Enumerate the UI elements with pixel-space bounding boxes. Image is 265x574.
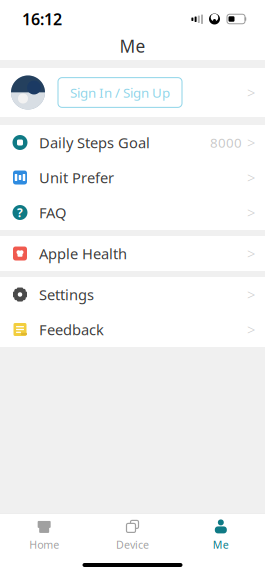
staticText: > <box>247 168 255 187</box>
staticText: > <box>247 285 255 304</box>
staticText: > <box>247 203 255 222</box>
staticText: 8000 <box>210 134 242 151</box>
staticText: > <box>247 320 255 339</box>
staticText: Unit Prefer <box>39 168 114 187</box>
staticText: > <box>247 244 255 263</box>
button[interactable]: Unit Prefer <box>0 160 265 195</box>
button[interactable]: Settings <box>0 277 265 312</box>
button[interactable]: ? <box>0 195 265 230</box>
staticText: Me <box>119 34 145 57</box>
staticText: Device <box>116 537 149 552</box>
staticText: Apple Health <box>39 244 127 263</box>
button[interactable]: Sign In / Sign Up <box>0 68 265 117</box>
staticText: Daily Steps Goal <box>39 133 150 152</box>
staticText: Me <box>213 537 229 552</box>
staticText: Home <box>29 537 59 552</box>
staticText: Feedback <box>39 320 104 339</box>
staticText: ? <box>17 204 23 220</box>
staticText: > <box>247 133 255 152</box>
button[interactable]: Me <box>177 515 265 555</box>
button[interactable]: Device <box>88 515 177 555</box>
staticText: FAQ <box>39 203 66 222</box>
staticText: Sign In / Sign Up <box>70 84 170 101</box>
staticText: > <box>247 83 255 102</box>
staticText: 16:12 <box>22 8 62 30</box>
button[interactable]: Apple Health <box>0 236 265 271</box>
button[interactable]: Home <box>0 515 88 555</box>
button[interactable]: Feedback <box>0 312 265 347</box>
button[interactable]: Daily Steps Goal <box>0 125 265 160</box>
staticText: Settings <box>39 285 94 304</box>
